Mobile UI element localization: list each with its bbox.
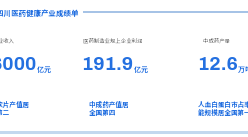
staticText: 6000	[0, 53, 37, 74]
staticText: 四川医药健康产业成绩单	[0, 7, 79, 18]
staticText: 人血白蛋白市占率 能规模居全国第一	[198, 99, 248, 116]
staticText: 医药制造业规上企业利润	[83, 37, 143, 45]
staticText: 医药健康产业营业收入	[0, 37, 14, 45]
staticText: 191.9	[82, 53, 134, 74]
staticText: 亿元	[134, 64, 148, 74]
staticText: 亿元	[37, 64, 51, 74]
staticText: 中成药产量	[203, 37, 230, 45]
staticText: 12.6	[198, 53, 238, 74]
staticText: 中成药产值居 全国第四	[89, 99, 129, 116]
staticText: 中药饮片产值居 全国第二	[0, 99, 30, 116]
staticText: 万吨	[238, 64, 248, 74]
